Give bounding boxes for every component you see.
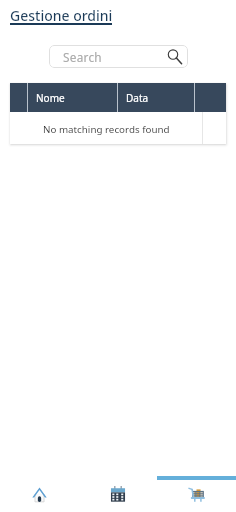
button[interactable]: Data: [118, 83, 194, 112]
staticText: Gestione ordini: [10, 6, 113, 25]
staticText: Data: [126, 91, 149, 105]
button[interactable]: Nome: [28, 83, 117, 112]
button[interactable]: Calendar: [78, 476, 157, 512]
button[interactable]: Home: [0, 476, 78, 512]
staticText: No matching records found: [43, 123, 170, 136]
staticText: Search: [63, 49, 102, 65]
button[interactable]: Search: [49, 45, 188, 68]
staticText: Nome: [36, 91, 65, 105]
button[interactable]: Orders: [157, 476, 236, 512]
